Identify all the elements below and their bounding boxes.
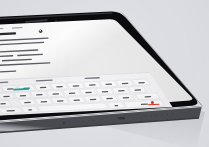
button[interactable]: Smartphone product photo — [0, 0, 209, 147]
